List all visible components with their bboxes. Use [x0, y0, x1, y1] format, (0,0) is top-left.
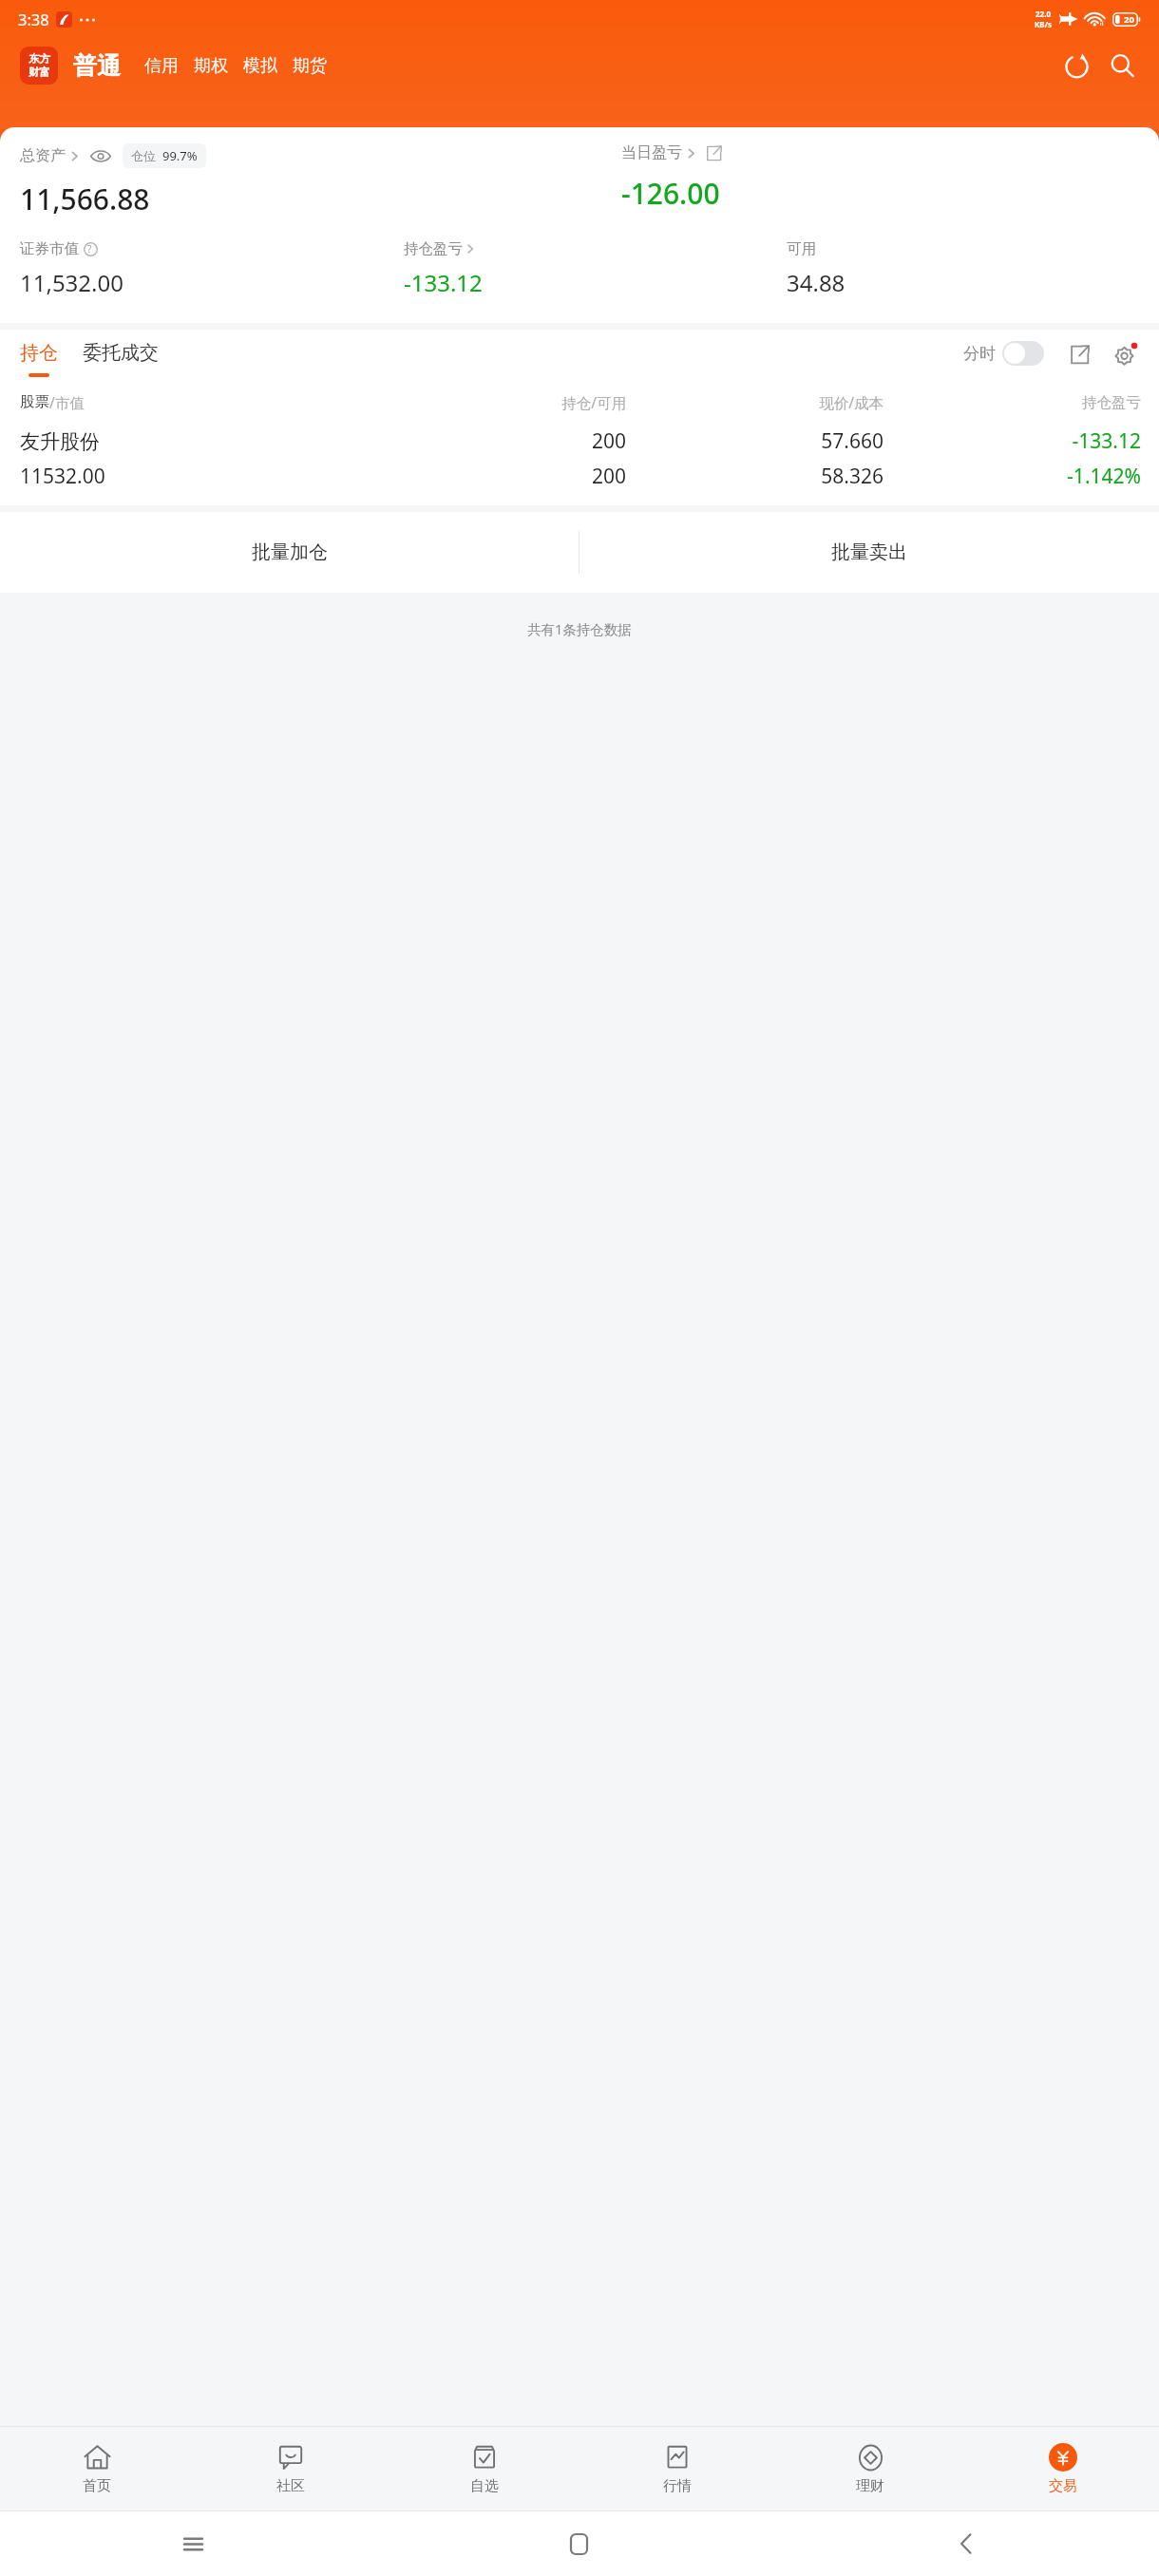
staticText: 理财 — [856, 2477, 884, 2495]
button[interactable]: 持仓 — [20, 341, 58, 377]
button[interactable]: 仓位 — [123, 143, 206, 168]
staticText: 批量加仓 — [252, 540, 328, 564]
staticText: 22.0 — [1035, 9, 1051, 19]
staticText: 99.7% — [162, 147, 198, 164]
button[interactable]: 行情 — [580, 2427, 773, 2510]
staticText: 批量卖出 — [831, 540, 907, 564]
staticText: 自选 — [470, 2477, 499, 2495]
staticText: 交易 — [1049, 2477, 1077, 2495]
staticText: 东方 — [28, 52, 50, 66]
button[interactable]: Refresh — [1057, 47, 1095, 85]
staticText: 11,566.88 — [20, 180, 150, 218]
staticText: -133.12 — [404, 267, 483, 298]
button[interactable]: 模拟 — [236, 55, 285, 77]
staticText: 首页 — [83, 2477, 111, 2495]
button[interactable]: Back — [772, 2511, 1159, 2576]
staticText: 11532.00 — [20, 463, 369, 490]
staticText: 行情 — [663, 2477, 692, 2495]
staticText: KB/s — [1035, 19, 1052, 29]
staticText: 共有1条持仓数据 — [527, 619, 632, 638]
staticText: ? — [87, 242, 92, 256]
button[interactable]: 自选 — [388, 2427, 580, 2510]
staticText: 可用 — [787, 239, 816, 258]
button[interactable]: 普通 — [73, 51, 121, 81]
staticText: /市值 — [49, 392, 85, 412]
button[interactable]: 期权 — [186, 55, 236, 77]
staticText: 友升股份 — [20, 429, 369, 454]
button[interactable]: 委托成交 — [83, 341, 159, 377]
staticText: 20 — [1124, 13, 1134, 26]
staticText: 证券市值 — [20, 239, 79, 258]
staticText: -133.12 — [883, 427, 1141, 455]
staticText: 持仓盈亏 — [404, 239, 463, 258]
staticText: 持仓盈亏 — [883, 393, 1141, 412]
button[interactable]: Share — [1063, 343, 1095, 375]
button[interactable]: 分时 — [963, 341, 1044, 378]
staticText: -126.00 — [621, 174, 720, 213]
button[interactable]: 批量卖出 — [579, 512, 1159, 593]
button[interactable]: 当日盈亏 — [621, 143, 722, 162]
button[interactable]: 总资产 — [20, 143, 206, 168]
staticText: 58.326 — [626, 463, 883, 490]
staticText: 200 — [369, 427, 626, 455]
button[interactable]: Home — [386, 2511, 772, 2576]
button[interactable]: 持仓盈亏 — [404, 239, 787, 298]
button[interactable]: 交易 — [966, 2427, 1159, 2510]
staticText: 持仓/可用 — [369, 392, 626, 412]
staticText: 总资产 — [20, 146, 66, 165]
staticText: 持仓 — [20, 341, 58, 365]
button[interactable]: 社区 — [194, 2427, 388, 2510]
button[interactable]: 理财 — [773, 2427, 966, 2510]
staticText: 11,532.00 — [20, 267, 123, 298]
button[interactable]: 友升股份 — [0, 426, 1159, 505]
button[interactable]: 证券市值 — [20, 239, 404, 298]
button[interactable]: Recents — [0, 2511, 386, 2576]
staticText: 社区 — [276, 2477, 305, 2495]
staticText: 股票 — [20, 392, 49, 411]
staticText: 仓位 — [131, 148, 156, 163]
button[interactable]: Settings — [1109, 343, 1141, 375]
staticText: 分时 — [963, 344, 996, 364]
staticText: 34.88 — [787, 267, 845, 298]
staticText: 当日盈亏 — [621, 143, 682, 162]
staticText: -1.142% — [883, 463, 1141, 490]
staticText: 财富 — [28, 66, 50, 79]
button[interactable]: Search — [1103, 47, 1141, 85]
staticText: 200 — [369, 463, 626, 490]
button[interactable]: 批量加仓 — [0, 512, 579, 593]
button[interactable]: 信用 — [137, 55, 186, 77]
staticText: 57.660 — [626, 427, 883, 455]
button[interactable]: 可用 — [787, 239, 1139, 298]
staticText: 委托成交 — [83, 341, 159, 365]
staticText: 现价/成本 — [626, 392, 883, 412]
button[interactable]: 期货 — [285, 55, 334, 77]
button[interactable]: 东方 — [20, 47, 58, 85]
staticText: 3:38 — [18, 9, 49, 29]
button[interactable]: 首页 — [0, 2427, 194, 2510]
